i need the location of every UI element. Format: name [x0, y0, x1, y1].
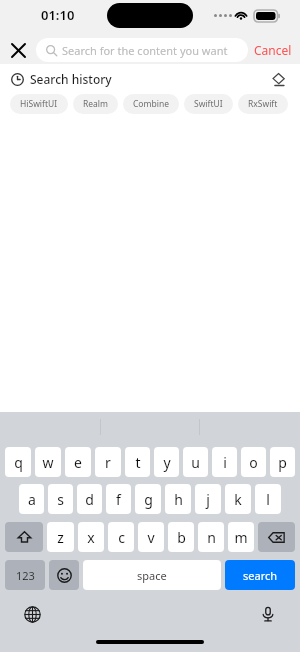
button[interactable]: Cancel — [254, 42, 292, 58]
staticText: m — [234, 528, 248, 547]
staticText: b — [177, 528, 186, 547]
button[interactable]: m — [228, 522, 254, 552]
staticText: Search history — [30, 71, 112, 87]
staticText: i — [223, 453, 227, 472]
button[interactable]: space — [83, 560, 221, 590]
button[interactable]: c — [108, 522, 134, 552]
button[interactable]: e — [65, 447, 91, 477]
staticText: SwiftUI — [194, 98, 223, 110]
staticText: k — [234, 490, 242, 509]
button[interactable]: j — [195, 484, 221, 514]
button[interactable]: p — [270, 447, 295, 477]
button[interactable]: v — [138, 522, 164, 552]
button[interactable]: n — [198, 522, 224, 552]
staticText: r — [105, 453, 111, 472]
staticText: 123 — [16, 568, 35, 583]
staticText: y — [163, 453, 171, 472]
staticText: Realm — [83, 98, 108, 110]
staticText: h — [174, 490, 183, 509]
staticText: search — [243, 568, 278, 583]
staticText: u — [191, 453, 200, 472]
button[interactable]: q — [5, 447, 31, 477]
button[interactable]: Backspace — [258, 522, 295, 552]
button[interactable]: y — [154, 447, 179, 477]
button[interactable]: Realm — [73, 94, 118, 114]
button[interactable]: Clear history — [267, 68, 289, 90]
button[interactable]: a — [19, 484, 44, 514]
button[interactable]: w — [35, 447, 61, 477]
button[interactable]: u — [183, 447, 208, 477]
button[interactable]: d — [77, 484, 102, 514]
button[interactable]: Combine — [123, 94, 179, 114]
staticText: Search for the content you want — [62, 43, 228, 58]
staticText: Combine — [133, 98, 169, 110]
staticText: w — [42, 453, 54, 472]
button[interactable]: o — [241, 447, 266, 477]
button[interactable]: r — [95, 447, 121, 477]
button[interactable]: k — [225, 484, 251, 514]
staticText: f — [116, 490, 121, 509]
staticText: l — [266, 490, 270, 509]
button[interactable]: RxSwift — [238, 94, 288, 114]
staticText: space — [137, 568, 167, 583]
button[interactable]: g — [135, 484, 161, 514]
staticText: Cancel — [254, 42, 292, 58]
staticText: o — [249, 453, 258, 472]
staticText: 01:10 — [41, 6, 75, 24]
button[interactable]: t — [125, 447, 150, 477]
button[interactable]: s — [48, 484, 73, 514]
button[interactable]: Change keyboard — [18, 600, 46, 628]
button[interactable]: HiSwiftUI — [10, 94, 68, 114]
staticText: n — [207, 528, 216, 547]
button[interactable]: search — [225, 560, 295, 590]
staticText: j — [206, 490, 210, 509]
button[interactable]: Search for the content you want — [36, 38, 248, 62]
button[interactable]: Close — [0, 36, 36, 64]
staticText: c — [118, 528, 125, 547]
button[interactable]: i — [212, 447, 237, 477]
button[interactable]: Voice input — [254, 600, 282, 628]
button[interactable]: h — [165, 484, 191, 514]
button[interactable]: b — [168, 522, 194, 552]
staticText: a — [28, 490, 36, 509]
button[interactable]: SwiftUI — [184, 94, 233, 114]
staticText: d — [85, 490, 94, 509]
staticText: x — [87, 528, 95, 547]
button[interactable]: x — [78, 522, 104, 552]
staticText: HiSwiftUI — [20, 98, 58, 110]
button[interactable]: Shift — [5, 522, 43, 552]
button[interactable]: Emoji — [49, 560, 79, 590]
button[interactable]: f — [106, 484, 131, 514]
staticText: p — [278, 453, 287, 472]
staticText: t — [135, 453, 141, 472]
staticText: q — [14, 453, 23, 472]
staticText: g — [144, 490, 153, 509]
button[interactable]: z — [47, 522, 74, 552]
staticText: v — [147, 528, 155, 547]
staticText: s — [57, 490, 64, 509]
button[interactable]: l — [255, 484, 281, 514]
staticText: z — [57, 528, 64, 547]
staticText: e — [74, 453, 82, 472]
button[interactable]: 123 — [5, 560, 45, 590]
staticText: RxSwift — [248, 98, 278, 110]
